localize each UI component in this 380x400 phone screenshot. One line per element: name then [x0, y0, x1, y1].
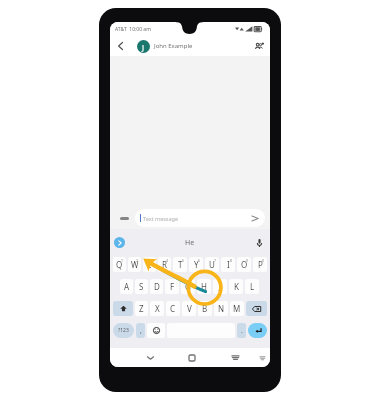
- button[interactable]: E: [143, 257, 156, 272]
- button[interactable]: Enter: [248, 323, 267, 338]
- staticText: AT&T 10:00 am: [115, 26, 151, 33]
- staticText: Q: [116, 259, 123, 270]
- button[interactable]: Home: [185, 351, 198, 364]
- staticText: N: [218, 303, 225, 314]
- button[interactable]: V: [182, 301, 196, 316]
- staticText: K: [234, 281, 239, 292]
- button[interactable]: S: [135, 279, 148, 294]
- staticText: D: [154, 281, 160, 292]
- staticText: 1: [121, 258, 124, 263]
- staticText: I: [227, 259, 230, 270]
- staticText: 2: [136, 258, 139, 263]
- staticText: Y: [194, 259, 199, 270]
- staticText: ?123: [118, 327, 129, 334]
- button[interactable]: Send: [249, 212, 261, 224]
- staticText: 6: [198, 258, 201, 263]
- button[interactable]: D: [150, 279, 163, 294]
- button[interactable]: R: [158, 257, 171, 272]
- button[interactable]: Add person: [252, 39, 266, 53]
- staticText: 0: [262, 258, 265, 263]
- button[interactable]: O: [237, 257, 251, 272]
- staticText: .: [241, 326, 243, 336]
- button[interactable]: M: [230, 301, 244, 316]
- staticText: H: [201, 281, 207, 292]
- button[interactable]: A: [120, 279, 133, 294]
- button[interactable]: P: [253, 257, 267, 272]
- button[interactable]: ?123: [113, 323, 134, 338]
- button[interactable]: K: [229, 279, 243, 294]
- button[interactable]: N: [214, 301, 228, 316]
- button[interactable]: F: [165, 279, 179, 294]
- button[interactable]: Shift: [113, 301, 133, 316]
- button[interactable]: Q: [113, 257, 126, 272]
- staticText: J: [142, 42, 145, 52]
- button[interactable]: W: [128, 257, 141, 272]
- button[interactable]: Expand suggestions: [114, 237, 125, 248]
- staticText: F: [170, 281, 175, 292]
- staticText: O: [241, 259, 248, 270]
- button[interactable]: H: [197, 279, 211, 294]
- staticText: A: [124, 281, 130, 292]
- button[interactable]: Attach: [118, 212, 130, 224]
- button[interactable]: J: [213, 279, 227, 294]
- button[interactable]: C: [166, 301, 180, 316]
- button[interactable]: Hide keyboard: [257, 352, 268, 363]
- staticText: He: [185, 238, 195, 248]
- staticText: 8: [230, 258, 233, 263]
- button[interactable]: U: [205, 257, 219, 272]
- staticText: 3: [151, 258, 154, 263]
- staticText: Text message: [143, 215, 179, 222]
- staticText: L: [250, 281, 255, 292]
- button[interactable]: Y: [189, 257, 203, 272]
- button[interactable]: B: [198, 301, 212, 316]
- staticText: W: [131, 259, 139, 270]
- staticText: S: [139, 281, 144, 292]
- staticText: M: [233, 303, 241, 314]
- button[interactable]: L: [245, 279, 259, 294]
- staticText: Z: [139, 303, 144, 314]
- staticText: V: [187, 303, 192, 314]
- button[interactable]: ,: [136, 323, 145, 338]
- button[interactable]: Text message: [135, 209, 265, 227]
- staticText: ,: [140, 326, 142, 336]
- staticText: 9: [246, 258, 249, 263]
- button[interactable]: I: [221, 257, 235, 272]
- staticText: C: [170, 303, 176, 314]
- staticText: J: [219, 281, 222, 292]
- button[interactable]: Recents: [229, 351, 242, 364]
- staticText: R: [162, 259, 167, 270]
- button[interactable]: T: [173, 257, 187, 272]
- button[interactable]: G: [181, 279, 195, 294]
- button[interactable]: Delete: [246, 301, 267, 316]
- staticText: 4: [166, 258, 169, 263]
- button[interactable]: Voice input: [254, 237, 265, 248]
- staticText: John Example: [154, 42, 193, 50]
- button[interactable]: Back: [144, 351, 157, 364]
- button[interactable]: Emoji: [147, 323, 165, 338]
- staticText: G: [185, 281, 191, 292]
- button[interactable]: .: [237, 323, 246, 338]
- staticText: X: [155, 303, 160, 314]
- button[interactable]: Z: [135, 301, 148, 316]
- staticText: E: [147, 259, 152, 270]
- staticText: 5: [182, 258, 185, 263]
- button[interactable]: Back: [114, 40, 126, 52]
- staticText: 7: [214, 258, 217, 263]
- staticText: B: [202, 303, 208, 314]
- staticText: T: [178, 259, 183, 270]
- staticText: P: [258, 259, 263, 270]
- button[interactable]: X: [150, 301, 164, 316]
- staticText: U: [209, 259, 215, 270]
